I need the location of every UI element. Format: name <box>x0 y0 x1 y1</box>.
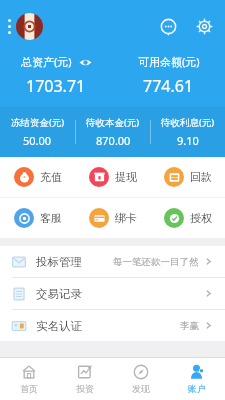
button[interactable]: 充值 <box>0 157 75 197</box>
button[interactable]: 账户 <box>169 358 225 400</box>
staticText: 投标管理 <box>36 255 82 269</box>
staticText: 交易记录 <box>36 287 82 301</box>
staticText: 9.10 <box>177 133 199 148</box>
button[interactable]: 投标管理 <box>0 246 225 277</box>
button[interactable]: 回款 <box>150 157 225 197</box>
staticText: 回款 <box>190 170 212 184</box>
staticText: 实名认证 <box>36 319 82 333</box>
button[interactable]: 客服 <box>0 198 75 238</box>
staticText: 账户 <box>188 383 206 394</box>
button[interactable]: 绑卡 <box>75 198 150 238</box>
staticText: 870.00 <box>96 133 131 148</box>
staticText: 客服 <box>40 211 62 225</box>
staticText: 提现 <box>115 170 137 184</box>
button[interactable]: 实名认证 <box>0 310 225 341</box>
button[interactable]: 授权 <box>150 198 225 238</box>
staticText: 绑卡 <box>115 211 137 225</box>
button[interactable]: 交易记录 <box>0 278 225 309</box>
staticText: 充值 <box>40 170 62 184</box>
staticText: 待收利息(元) <box>161 116 215 129</box>
button[interactable]: Toggle visibility <box>78 55 92 69</box>
button[interactable]: 首页 <box>0 358 57 400</box>
staticText: 待收本金(元) <box>86 116 140 129</box>
button[interactable]: 发现 <box>113 358 169 400</box>
staticText: 每一笔还款一目了然 <box>113 256 199 268</box>
staticText: 可用余额(元) <box>138 54 200 69</box>
button[interactable]: 投资 <box>57 358 113 400</box>
staticText: 首页 <box>20 383 38 394</box>
staticText: 发现 <box>132 383 150 394</box>
staticText: 774.61 <box>143 75 194 97</box>
button[interactable]: Settings <box>191 13 217 39</box>
button[interactable]: Messages <box>155 13 181 39</box>
staticText: 冻结资金(元) <box>11 116 65 129</box>
staticText: 1703.71 <box>26 75 86 97</box>
staticText: 李赢 <box>180 320 199 332</box>
staticText: 授权 <box>190 211 212 225</box>
staticText: 总资产(元) <box>21 54 72 69</box>
button[interactable]: Profile avatar <box>16 13 43 40</box>
button[interactable]: 提现 <box>75 157 150 197</box>
staticText: 50.00 <box>23 133 52 148</box>
staticText: 投资 <box>76 383 94 394</box>
